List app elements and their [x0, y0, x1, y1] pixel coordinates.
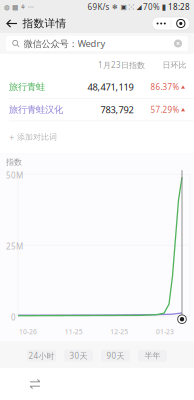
- button[interactable]: +: [0, 121, 194, 153]
- button[interactable]: 30天: [64, 350, 93, 362]
- staticText: 01-23: [156, 327, 174, 336]
- button[interactable]: 24小时: [27, 350, 56, 362]
- button[interactable]: 旅行青蛙汉化: [0, 99, 194, 121]
- staticText: 旅行青蛙: [9, 81, 45, 93]
- staticText: 0: [11, 312, 16, 323]
- staticText: 69K/s: [87, 2, 109, 12]
- staticText: 12-25: [110, 327, 128, 336]
- staticText: 48,471,119: [87, 81, 133, 93]
- staticText: 10-26: [19, 327, 37, 336]
- button[interactable]: Close mini program: [171, 17, 190, 30]
- staticText: ⁙: [128, 3, 134, 11]
- staticText: 24小时: [28, 350, 54, 361]
- staticText: 30天: [69, 350, 87, 361]
- staticText: 旅行青蛙汉化: [9, 104, 63, 115]
- button[interactable]: 半年: [138, 350, 167, 362]
- staticText: +: [9, 131, 14, 143]
- staticText: 添加对比词: [17, 132, 57, 142]
- staticText: 半年: [144, 351, 160, 361]
- staticText: ✻: [112, 3, 118, 11]
- staticText: ▣: [120, 3, 126, 11]
- staticText: 70%: [143, 2, 160, 12]
- button[interactable]: Compare: [22, 371, 48, 397]
- button[interactable]: More options: [152, 17, 171, 30]
- staticText: 57.29%: [150, 104, 179, 115]
- button[interactable]: 90天: [101, 350, 130, 362]
- staticText: ◍ ▩ ⚘ ···: [4, 3, 34, 11]
- staticText: 783,792: [100, 103, 133, 116]
- staticText: 18:28: [168, 2, 190, 12]
- staticText: 25M: [6, 241, 23, 252]
- staticText: 1月23日指数: [98, 60, 145, 70]
- button[interactable]: Back to 指数详情: [0, 14, 70, 33]
- staticText: 日环比: [162, 60, 186, 70]
- staticText: ◢: [136, 3, 141, 11]
- button[interactable]: 微信公众号：Wedry: [0, 33, 194, 54]
- staticText: 指数详情: [22, 17, 66, 30]
- staticText: 微信公众号：Wedry: [24, 37, 106, 50]
- staticText: 86.37%: [150, 82, 179, 92]
- staticText: 指数: [6, 157, 22, 167]
- staticText: 50M: [6, 170, 23, 181]
- staticText: ▮: [161, 2, 165, 12]
- staticText: 11-25: [65, 327, 83, 336]
- button[interactable]: 旅行青蛙: [0, 76, 194, 98]
- staticText: 90天: [106, 350, 124, 361]
